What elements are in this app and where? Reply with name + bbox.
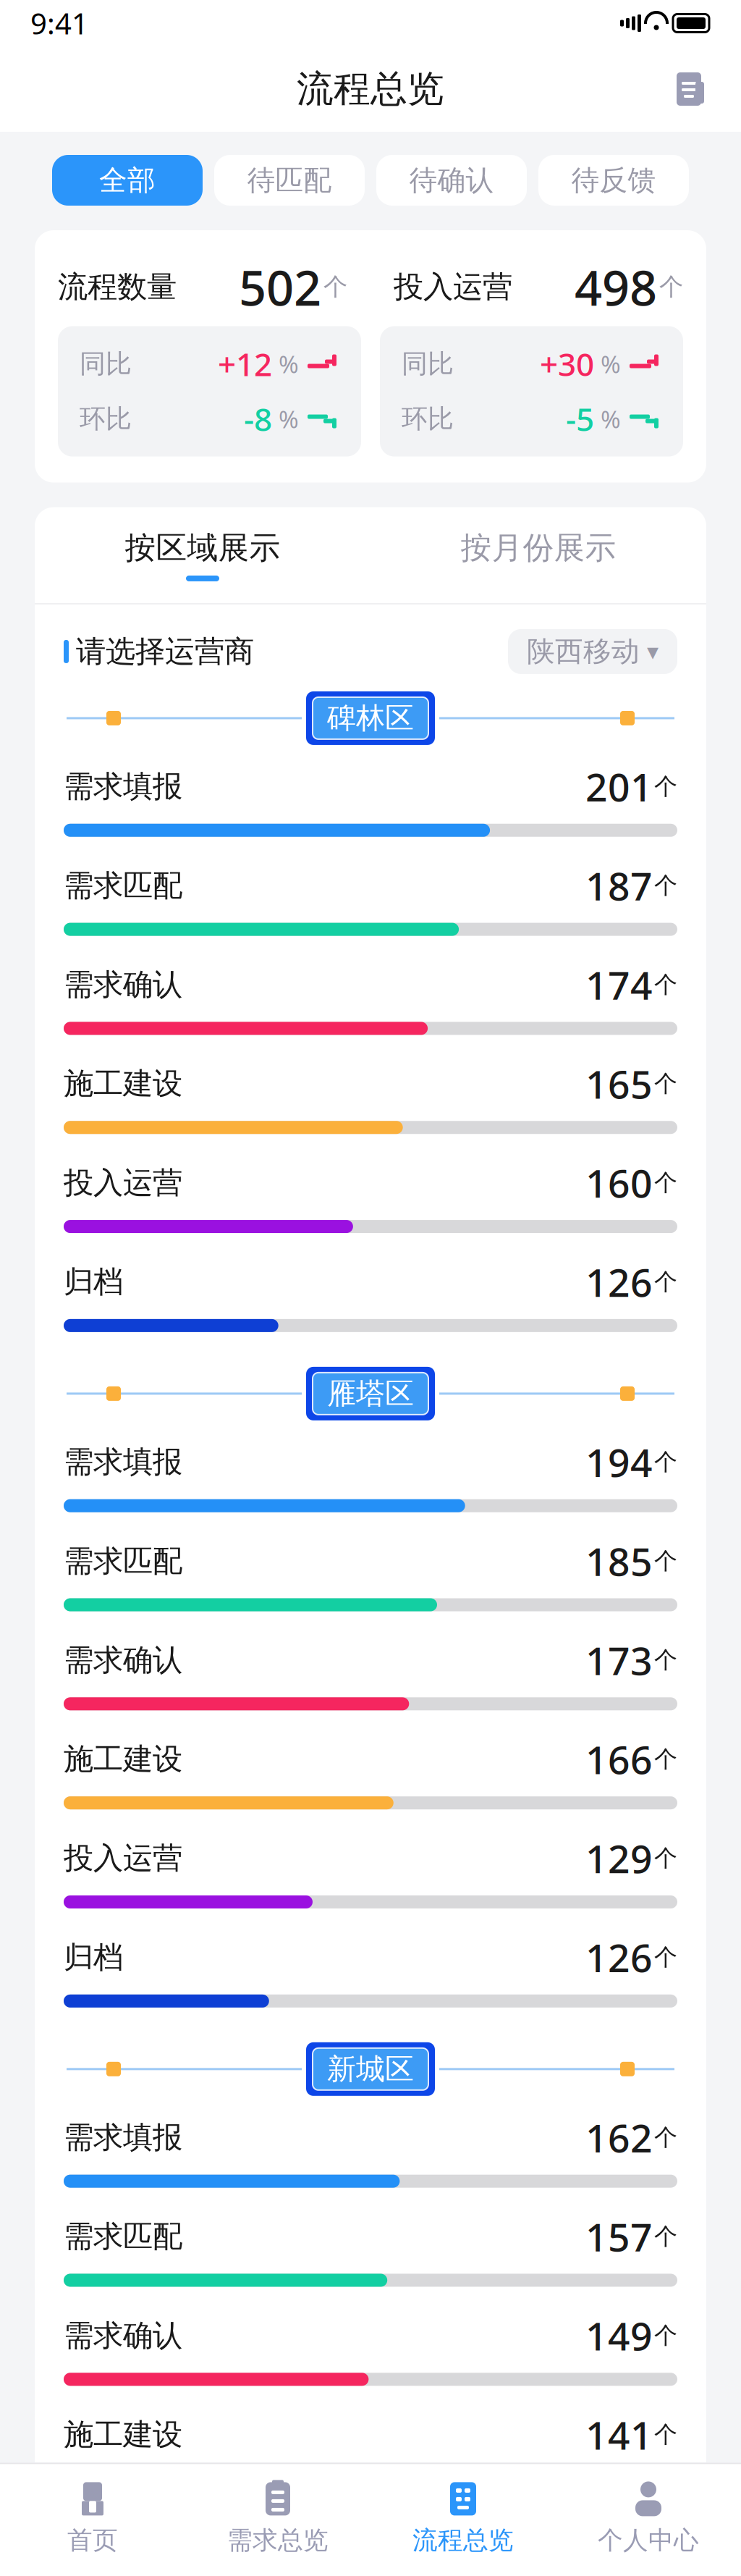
staticText: 个	[654, 1844, 677, 1872]
staticText: 498	[575, 255, 657, 319]
staticText: 投入运营	[64, 1840, 182, 1877]
staticText: 个	[654, 871, 677, 900]
staticText: %	[272, 403, 299, 435]
staticText: 首页	[67, 2525, 118, 2556]
staticText: 按月份展示	[461, 529, 616, 567]
staticText: 162	[585, 2112, 653, 2163]
staticText: 需求确认	[64, 2317, 182, 2354]
staticText: 201	[585, 761, 653, 812]
staticText: 同比	[402, 348, 454, 380]
staticText: 185	[585, 1535, 653, 1587]
staticText: 按区域展示	[125, 529, 280, 567]
staticText: 需求确认	[64, 1642, 182, 1679]
staticText: 请选择运营商	[76, 633, 254, 670]
button[interactable]: 需求总览	[185, 2476, 370, 2560]
staticText: ▾	[647, 638, 659, 665]
staticText: %	[594, 348, 621, 380]
staticText: 碑林区	[327, 700, 414, 736]
staticText: 需求匹配	[64, 2218, 182, 2255]
staticText: 归档	[64, 1263, 123, 1300]
staticText: 新城区	[327, 2051, 414, 2087]
staticText: 166	[585, 1734, 653, 1785]
staticText: 个人中心	[598, 2525, 699, 2556]
staticText: 9:41	[30, 4, 88, 42]
staticText: 流程总览	[412, 2525, 514, 2556]
staticText: 待反馈	[571, 163, 656, 198]
staticText: 个	[654, 1169, 677, 1197]
staticText: 全部	[99, 163, 156, 198]
staticText: 个	[654, 2420, 677, 2449]
staticText: 需求匹配	[64, 867, 182, 904]
staticText: 流程数量	[58, 269, 177, 305]
staticText: 归档	[64, 1939, 123, 1976]
staticText: 165	[585, 1058, 653, 1109]
staticText: 136	[585, 2508, 653, 2559]
staticText: 流程总览	[297, 67, 444, 112]
staticText: 个	[654, 2222, 677, 2251]
staticText: 个	[654, 1547, 677, 1575]
staticText: 149	[585, 2310, 653, 2361]
button[interactable]: 待匹配	[214, 155, 365, 206]
staticText: 施工建设	[64, 2416, 182, 2453]
staticText: 待确认	[409, 163, 494, 198]
staticText: 187	[585, 860, 653, 911]
staticText: 投入运营	[394, 269, 512, 305]
staticText: +12	[218, 343, 272, 385]
staticText: -8	[244, 398, 272, 440]
button[interactable]: 全部	[52, 155, 203, 206]
staticText: +30	[540, 343, 594, 385]
staticText: 129	[585, 1833, 653, 1884]
staticText: 待匹配	[247, 163, 332, 198]
staticText: 174	[585, 959, 653, 1010]
staticText: 个	[654, 2519, 677, 2548]
staticText: 需求确认	[64, 966, 182, 1003]
button[interactable]: 流程总览	[370, 2476, 556, 2560]
staticText: 个	[323, 272, 347, 302]
staticText: 173	[585, 1634, 653, 1686]
staticText: 需求填报	[64, 1444, 182, 1480]
staticText: %	[272, 348, 299, 380]
staticText: 环比	[402, 403, 454, 435]
staticText: 141	[585, 2409, 653, 2460]
staticText: 126	[585, 1256, 653, 1307]
staticText: -5	[566, 398, 594, 440]
staticText: 个	[654, 1268, 677, 1296]
staticText: 个	[654, 1745, 677, 1773]
button[interactable]: 待反馈	[538, 155, 689, 206]
button[interactable]: 首页	[0, 2476, 185, 2560]
staticText: 施工建设	[64, 1741, 182, 1778]
button[interactable]: 个人中心	[556, 2476, 741, 2560]
staticText: 126	[585, 1932, 653, 1983]
button[interactable]: 待确认	[376, 155, 527, 206]
staticText: 502	[239, 255, 321, 319]
staticText: 同比	[80, 348, 132, 380]
button[interactable]: 编辑	[670, 67, 714, 111]
staticText: 投入运营	[64, 2515, 182, 2552]
button[interactable]: 陕西移动	[508, 629, 677, 674]
staticText: 个	[654, 970, 677, 999]
staticText: 个	[654, 2123, 677, 2152]
staticText: 需求匹配	[64, 1543, 182, 1579]
button[interactable]: 按区域展示	[35, 507, 370, 603]
staticText: 环比	[80, 403, 132, 435]
staticText: 个	[654, 1069, 677, 1098]
staticText: 个	[654, 1448, 677, 1476]
staticText: 个	[654, 772, 677, 801]
staticText: 施工建设	[64, 1065, 182, 1102]
staticText: 160	[585, 1157, 653, 1208]
staticText: 陕西移动	[527, 634, 640, 669]
staticText: 个	[654, 2321, 677, 2350]
button[interactable]: 按月份展示	[370, 507, 706, 603]
staticText: 雁塔区	[327, 1376, 414, 1411]
staticText: 个	[659, 272, 683, 302]
staticText: 194	[585, 1436, 653, 1488]
staticText: 个	[654, 1646, 677, 1674]
staticText: 需求总览	[227, 2525, 329, 2556]
staticText: %	[594, 403, 621, 435]
staticText: 需求填报	[64, 2119, 182, 2156]
staticText: 需求填报	[64, 768, 182, 805]
staticText: 投入运营	[64, 1164, 182, 1201]
staticText: 个	[654, 1943, 677, 1972]
staticText: 157	[585, 2211, 653, 2262]
